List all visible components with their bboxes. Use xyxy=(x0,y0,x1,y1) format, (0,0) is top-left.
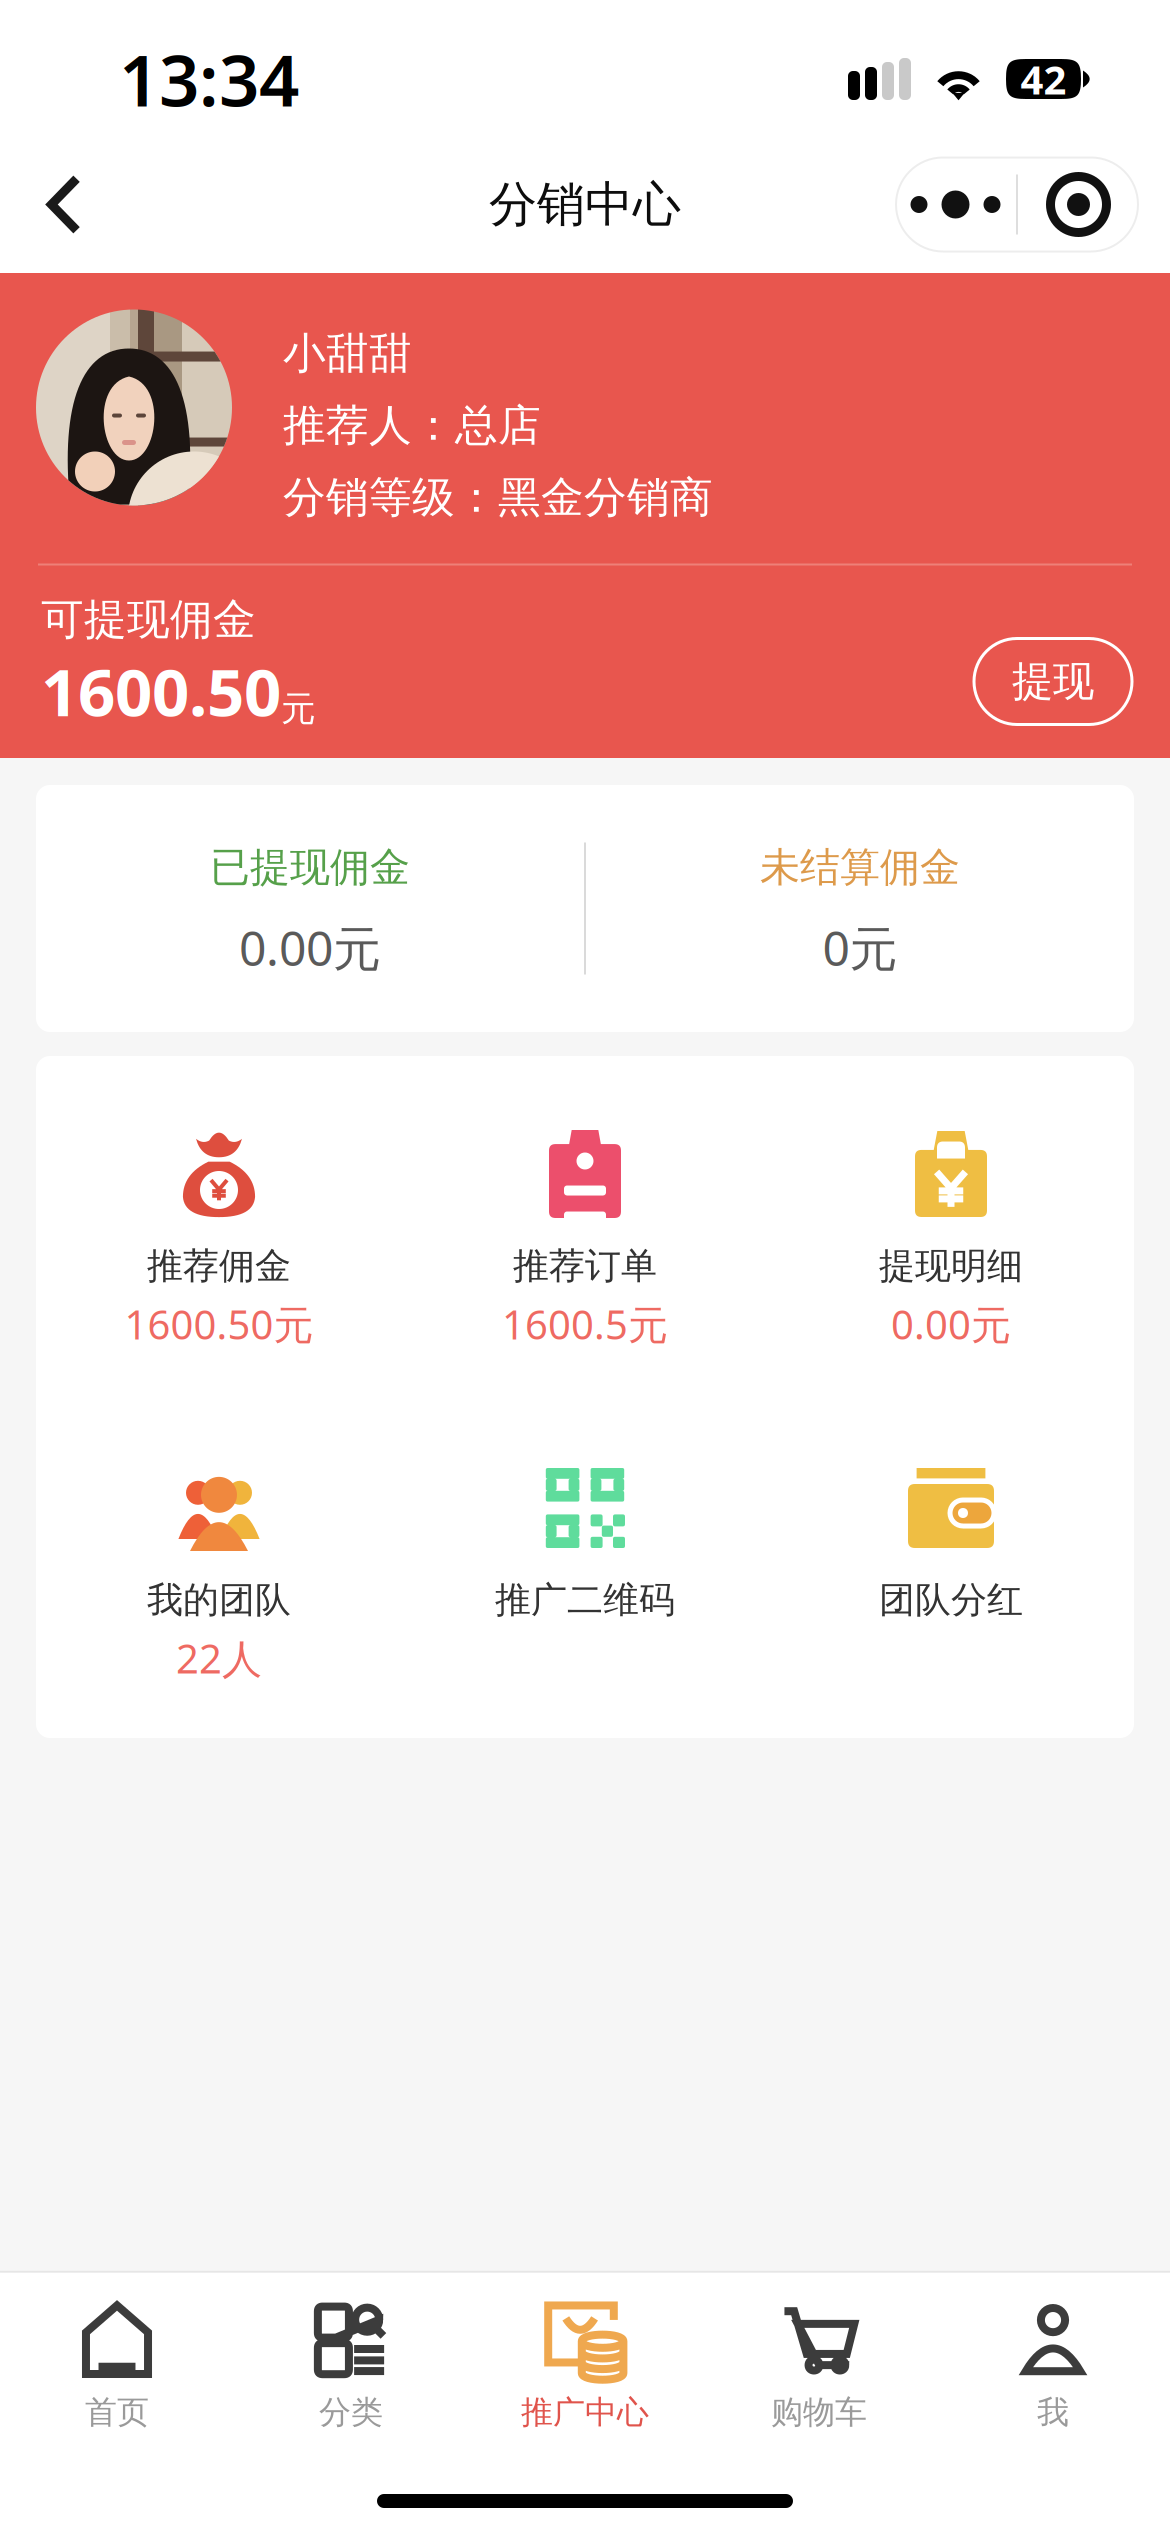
button[interactable]: 提现 xyxy=(974,638,1132,724)
staticText: 提现 xyxy=(1012,656,1094,707)
staticText: 推广中心 xyxy=(521,2393,649,2432)
staticText: 小甜甜 xyxy=(283,327,412,380)
button[interactable]: 首页 xyxy=(0,2301,234,2432)
button[interactable]: 推荐订单 xyxy=(402,1128,768,1386)
staticText: 推广二维码 xyxy=(495,1578,675,1622)
staticText: 元 xyxy=(281,688,316,730)
staticText: 1600.50元 xyxy=(124,1297,313,1350)
staticText: 42 xyxy=(1020,52,1066,105)
button[interactable]: 已提现佣金 xyxy=(36,785,584,1032)
staticText: 团队分红 xyxy=(879,1578,1023,1622)
staticText: 1600.5元 xyxy=(502,1297,668,1350)
button[interactable]: 推荐佣金 xyxy=(36,1128,402,1386)
staticText: 分销等级：黑金分销商 xyxy=(283,471,713,524)
button[interactable]: 推广二维码 xyxy=(402,1462,768,1720)
staticText: 推荐佣金 xyxy=(147,1244,291,1288)
staticText: 我 xyxy=(1037,2393,1069,2432)
staticText: 首页 xyxy=(85,2393,149,2432)
staticText: 分类 xyxy=(319,2393,383,2432)
button[interactable]: 我的团队 xyxy=(36,1462,402,1720)
staticText: 我的团队 xyxy=(147,1578,291,1622)
staticText: 0元 xyxy=(822,916,897,979)
staticText: 13:34 xyxy=(119,32,299,126)
button[interactable]: 我 xyxy=(936,2301,1170,2432)
button[interactable]: More options xyxy=(895,157,1016,251)
button[interactable]: 分类 xyxy=(234,2301,468,2432)
staticText: 购物车 xyxy=(771,2393,867,2432)
staticText: 可提现佣金 xyxy=(41,593,256,646)
staticText: 分销中心 xyxy=(489,175,681,234)
button[interactable]: 团队分红 xyxy=(768,1462,1134,1720)
button[interactable]: 推广中心 xyxy=(468,2301,702,2432)
staticText: 1600.50 xyxy=(41,647,281,734)
button[interactable]: 未结算佣金 xyxy=(586,785,1134,1032)
button[interactable]: 购物车 xyxy=(702,2301,936,2432)
button[interactable]: Back xyxy=(0,149,128,259)
staticText: 已提现佣金 xyxy=(210,843,410,892)
staticText: 推荐订单 xyxy=(513,1244,657,1288)
staticText: 0.00元 xyxy=(891,1297,1011,1350)
staticText: 推荐人：总店 xyxy=(283,399,541,452)
button[interactable]: 提现明细 xyxy=(768,1128,1134,1386)
staticText: 未结算佣金 xyxy=(760,843,960,892)
staticText: 提现明细 xyxy=(879,1244,1023,1288)
button[interactable]: Close mini program xyxy=(1018,157,1139,251)
staticText: 0.00元 xyxy=(239,916,381,979)
staticText: 22人 xyxy=(176,1631,262,1684)
